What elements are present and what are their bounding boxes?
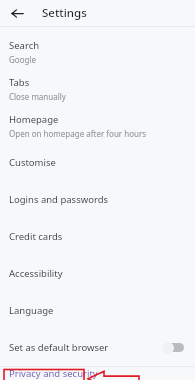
staticText: Open on homepage after four hours [9, 128, 147, 139]
button[interactable]: Credit cards [0, 218, 195, 255]
button[interactable]: Search [0, 33, 195, 70]
button[interactable]: Homepage [0, 107, 195, 144]
staticText: Accessibility [9, 267, 63, 280]
button[interactable]: Privacy and security [0, 367, 195, 380]
staticText: Google [9, 54, 36, 65]
button[interactable]: Logins and passwords [0, 181, 195, 218]
staticText: Close manually [9, 91, 66, 102]
staticText: Tabs [9, 76, 30, 89]
staticText: Set as default browser [9, 341, 162, 354]
button[interactable]: Tabs [0, 70, 195, 107]
staticText: Credit cards [9, 230, 63, 243]
staticText: Privacy and security [9, 367, 98, 380]
staticText: Language [9, 304, 54, 317]
staticText: Search [9, 39, 40, 52]
button[interactable]: Customise [0, 144, 195, 181]
staticText: Logins and passwords [9, 193, 109, 206]
button[interactable]: Set as default browser [0, 329, 195, 366]
button[interactable]: Language [0, 292, 195, 329]
staticText: Homepage [9, 113, 59, 126]
staticText: Settings [42, 5, 87, 21]
button[interactable]: Back [6, 2, 28, 24]
staticText: Customise [9, 156, 56, 169]
button[interactable]: Accessibility [0, 255, 195, 292]
